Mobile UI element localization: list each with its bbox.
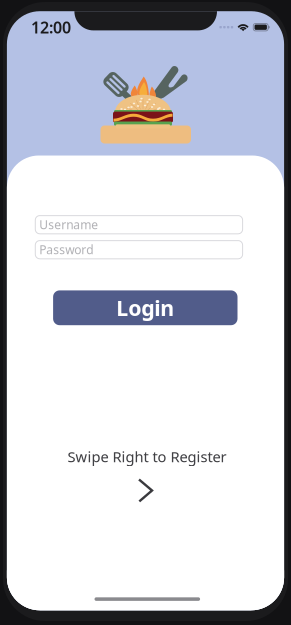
button[interactable]: Register: [136, 476, 155, 504]
button[interactable]: Username: [35, 216, 243, 234]
staticText: Username: [39, 217, 98, 233]
staticText: 12:00: [31, 17, 71, 38]
staticText: Login: [116, 294, 174, 322]
button[interactable]: Login: [53, 290, 237, 325]
button[interactable]: Password: [35, 241, 243, 259]
staticText: Swipe Right to Register: [67, 447, 226, 466]
staticText: Password: [39, 242, 93, 258]
